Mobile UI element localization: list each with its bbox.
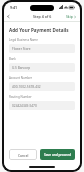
button[interactable]: Save and proceed: [40, 149, 75, 160]
staticText: Flower Store: [12, 47, 31, 51]
staticText: Cancel: [18, 153, 29, 157]
staticText: 024424349-5470: [12, 104, 37, 108]
staticText: Add Your Payment Details: [9, 27, 69, 33]
button[interactable]: Back: [4, 12, 13, 21]
staticText: Skip: [66, 14, 73, 19]
button[interactable]: Flower Store: [9, 44, 75, 53]
staticText: Legal Business Name: [9, 38, 38, 42]
staticText: 400-1002-5678-432: [12, 85, 41, 89]
button[interactable]: U.S Bancorp: [9, 63, 75, 72]
staticText: U.S Bancorp: [12, 66, 31, 70]
staticText: Account Number: [9, 76, 33, 80]
button[interactable]: 400-1002-5678-432: [9, 82, 75, 91]
button[interactable]: Cancel: [9, 149, 37, 160]
staticText: Bank: [9, 57, 16, 61]
button[interactable]: 024424349-5470: [9, 101, 75, 110]
staticText: Save and proceed: [44, 153, 71, 157]
staticText: Routing Number: [9, 95, 32, 99]
staticText: Step 4 of 6: [33, 14, 52, 19]
staticText: 9:41: [10, 5, 18, 10]
button[interactable]: Skip: [63, 12, 80, 21]
